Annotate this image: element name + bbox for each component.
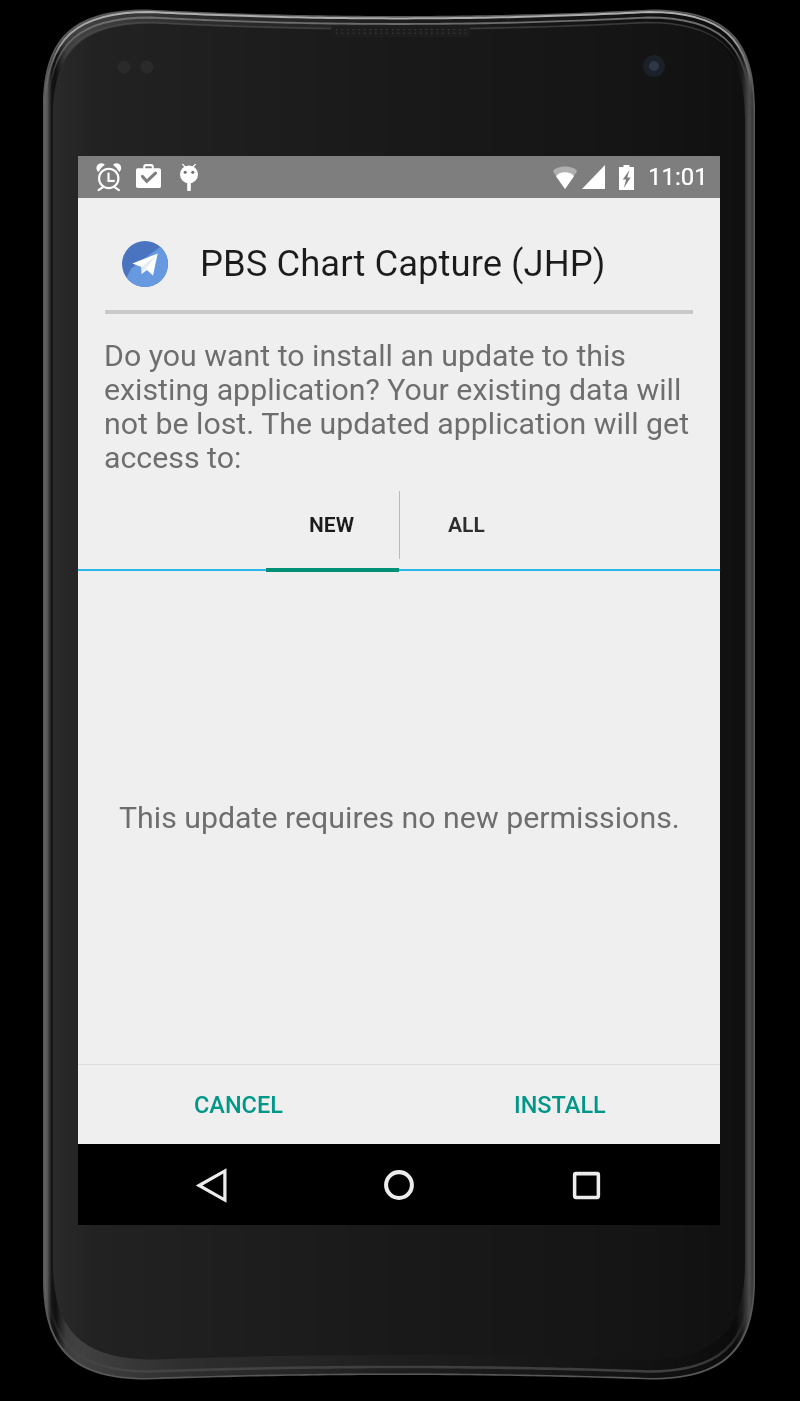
staticText: PBS Chart Capture (JHP) — [200, 242, 606, 285]
button[interactable]: ALL — [399, 478, 534, 573]
staticText: This update requires no new permissions. — [119, 800, 680, 836]
button[interactable]: Recent apps — [558, 1157, 614, 1213]
staticText: Do you want to install an update to this… — [104, 338, 714, 475]
button[interactable]: INSTALL — [399, 1065, 720, 1144]
staticText: CANCEL — [194, 1091, 283, 1119]
staticText: NEW — [309, 513, 355, 538]
staticText: 11:01 — [648, 163, 708, 191]
button[interactable]: CANCEL — [78, 1065, 399, 1144]
button[interactable]: Home — [371, 1157, 427, 1213]
button[interactable]: NEW — [264, 478, 399, 573]
button[interactable]: Back — [184, 1157, 240, 1213]
staticText: INSTALL — [514, 1091, 606, 1119]
staticText: ALL — [448, 513, 485, 538]
